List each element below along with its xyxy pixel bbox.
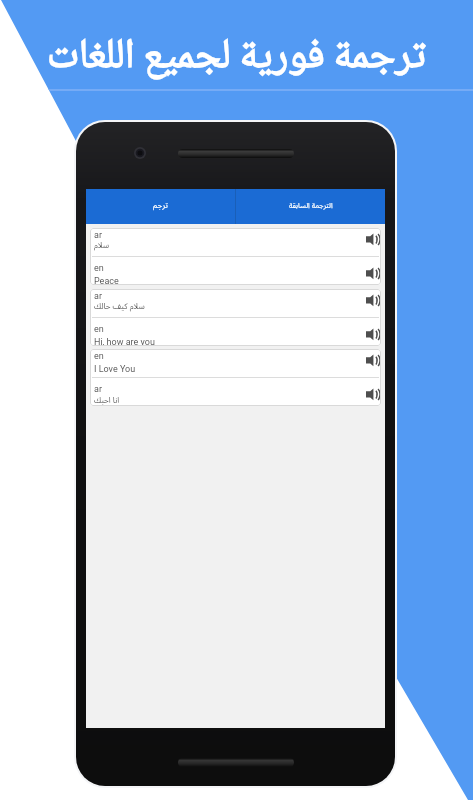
button[interactable]: ترجم xyxy=(86,189,235,224)
button[interactable]: en xyxy=(90,318,381,346)
staticText: ترجمة فورية لجميع اللغات xyxy=(47,23,426,93)
staticText: Peace xyxy=(94,276,119,285)
button[interactable]: Play pronunciation xyxy=(364,228,381,250)
staticText: انا احبك xyxy=(94,394,120,405)
staticText: en xyxy=(94,263,104,274)
button[interactable]: Play pronunciation xyxy=(364,289,381,311)
staticText: en xyxy=(94,324,104,335)
staticText: سلام xyxy=(94,239,109,250)
staticText: ar xyxy=(94,384,102,395)
button[interactable]: ar xyxy=(90,289,381,317)
staticText: ترجم xyxy=(153,199,168,210)
button[interactable]: Play pronunciation xyxy=(364,262,381,284)
button[interactable]: Play pronunciation xyxy=(364,323,381,345)
button[interactable]: en xyxy=(90,257,381,285)
button[interactable]: الترجمة السابقة xyxy=(236,189,385,224)
staticText: ar xyxy=(94,291,102,302)
button[interactable]: ar xyxy=(90,228,381,256)
button[interactable]: Play pronunciation xyxy=(364,349,381,371)
staticText: Hi, how are you xyxy=(94,337,155,346)
staticText: سلام كيف حالك xyxy=(94,300,145,311)
staticText: ar xyxy=(94,230,102,241)
button[interactable]: Play pronunciation xyxy=(364,383,381,405)
staticText: I Love You xyxy=(94,364,136,375)
button[interactable]: en xyxy=(90,349,381,377)
staticText: الترجمة السابقة xyxy=(289,200,333,210)
button[interactable]: ar xyxy=(90,378,381,406)
staticText: en xyxy=(94,351,104,362)
